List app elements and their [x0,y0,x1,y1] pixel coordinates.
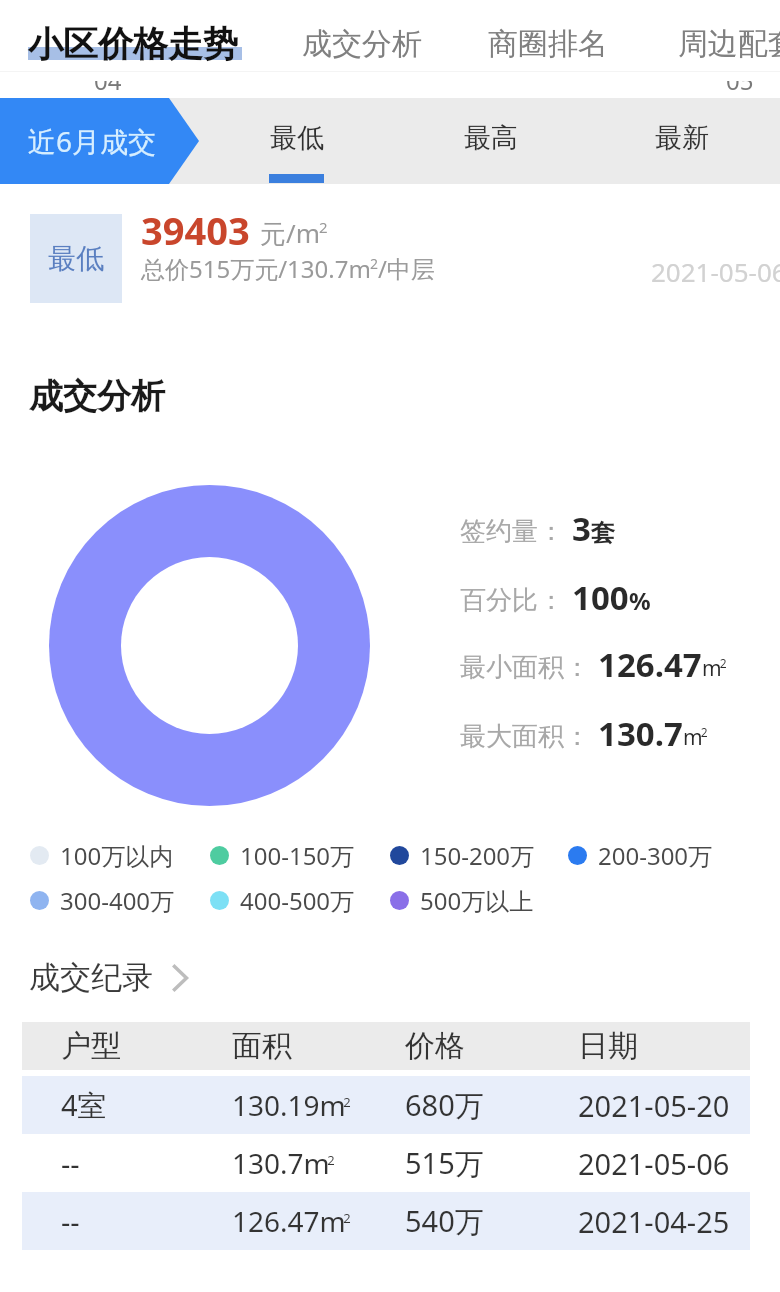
staticText: 2021-05-20 [578,1086,730,1125]
staticText: 面积 [232,1027,292,1065]
staticText: 100 [572,575,629,620]
button[interactable] [22,1192,750,1250]
button[interactable]: 成交纪录 [29,958,188,997]
staticText: 最新 [655,121,709,155]
staticText: m2 [702,654,727,683]
staticText: 最低 [48,241,104,276]
staticText: 成交纪录 [29,958,153,997]
staticText: 近6月成交 [28,122,157,160]
staticText: 2021-04-25 [578,1202,730,1241]
staticText: 2021-05-06 [578,1144,730,1183]
staticText: 最低 [270,121,324,155]
staticText: 百分比： [460,584,564,617]
staticText: 680万 [405,1085,484,1125]
staticText: 200-300万 [598,839,713,872]
staticText: 300-400万 [60,884,175,917]
staticText: 元/m2 [260,215,328,251]
staticText: 05 [726,64,754,97]
button[interactable]: 商圈排名 [488,25,608,63]
staticText: 套 [591,518,615,548]
staticText: 126.47 [598,642,702,687]
staticText: % [629,584,651,617]
other: 查看成交纪录 [173,965,188,991]
staticText: 日期 [578,1027,638,1065]
staticText: 150-200万 [420,839,535,872]
staticText: 小区价格走势 [28,22,238,66]
staticText: 最高 [464,121,518,155]
staticText: 130.7 [598,711,683,756]
staticText: 500万以上 [420,884,534,917]
button[interactable]: 最低 [236,98,356,184]
button[interactable]: 最新 [621,98,741,184]
staticText: m2 [683,723,708,752]
staticText: 130.19m2 [232,1086,351,1124]
staticText: 价格 [405,1027,465,1065]
button[interactable] [22,1076,750,1134]
staticText: 总价515万元/130.7m2/中层 [141,252,435,285]
staticText: 130.7m2 [232,1144,335,1182]
staticText: 39403 [141,204,250,256]
staticText: 2021-05-06 [651,254,780,289]
staticText: 户型 [61,1027,121,1065]
staticText: 126.47m2 [232,1202,351,1240]
button[interactable]: 周边配套 [678,25,780,63]
staticText: 04 [94,64,122,97]
button[interactable]: 近6月成交 [0,98,199,184]
staticText: 100万以内 [60,839,174,872]
staticText: 3 [572,506,591,551]
button[interactable]: 小区价格走势 [28,22,238,66]
staticText: -- [61,1202,80,1241]
button[interactable] [22,1134,750,1192]
button[interactable]: 成交分析 [302,25,422,63]
staticText: 4室 [61,1085,107,1125]
button[interactable]: 最高 [430,98,550,184]
staticText: 签约量： [460,515,564,548]
staticText: 最大面积： [460,720,590,753]
staticText: -- [61,1144,80,1183]
staticText: 最小面积： [460,651,590,684]
staticText: 540万 [405,1201,484,1241]
staticText: 515万 [405,1143,484,1183]
staticText: 100-150万 [240,839,355,872]
staticText: 成交分析 [29,375,165,418]
staticText: 400-500万 [240,884,355,917]
